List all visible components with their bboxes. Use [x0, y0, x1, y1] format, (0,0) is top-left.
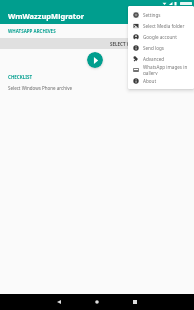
- button[interactable]: Settings: [128, 9, 194, 20]
- staticText: CHECKLIST: [8, 74, 33, 80]
- staticText: WhatsApp images in gallery: [143, 64, 194, 75]
- staticText: SELECT WINDOWS PHONE ARCHIVE: [110, 41, 188, 47]
- button[interactable]: About: [128, 75, 194, 86]
- button[interactable]: Select Media folder: [128, 20, 194, 31]
- button[interactable]: WhatsApp images in gallery: [128, 64, 194, 75]
- button[interactable]: Recents: [124, 294, 146, 310]
- staticText: About: [143, 78, 157, 84]
- staticText: Send logs: [143, 45, 164, 51]
- button[interactable]: SELECT WINDOWS PHONE ARCHIVE: [0, 38, 194, 49]
- staticText: Select Media folder: [143, 23, 185, 29]
- staticText: WmWazzupMigrator: [8, 11, 85, 21]
- staticText: WHATSAPP ARCHIVES: [8, 28, 56, 34]
- staticText: Settings: [143, 12, 161, 18]
- staticText: Select Windows Phone archive: [8, 85, 72, 91]
- button[interactable]: Start migration: [87, 52, 103, 68]
- button[interactable]: Home: [86, 294, 108, 310]
- button[interactable]: Send logs: [128, 42, 194, 53]
- button[interactable]: Advanced: [128, 53, 194, 64]
- button[interactable]: Google account: [128, 31, 194, 42]
- staticText: Google account: [143, 34, 177, 40]
- button[interactable]: Back: [48, 294, 70, 310]
- staticText: Advanced: [143, 56, 165, 62]
